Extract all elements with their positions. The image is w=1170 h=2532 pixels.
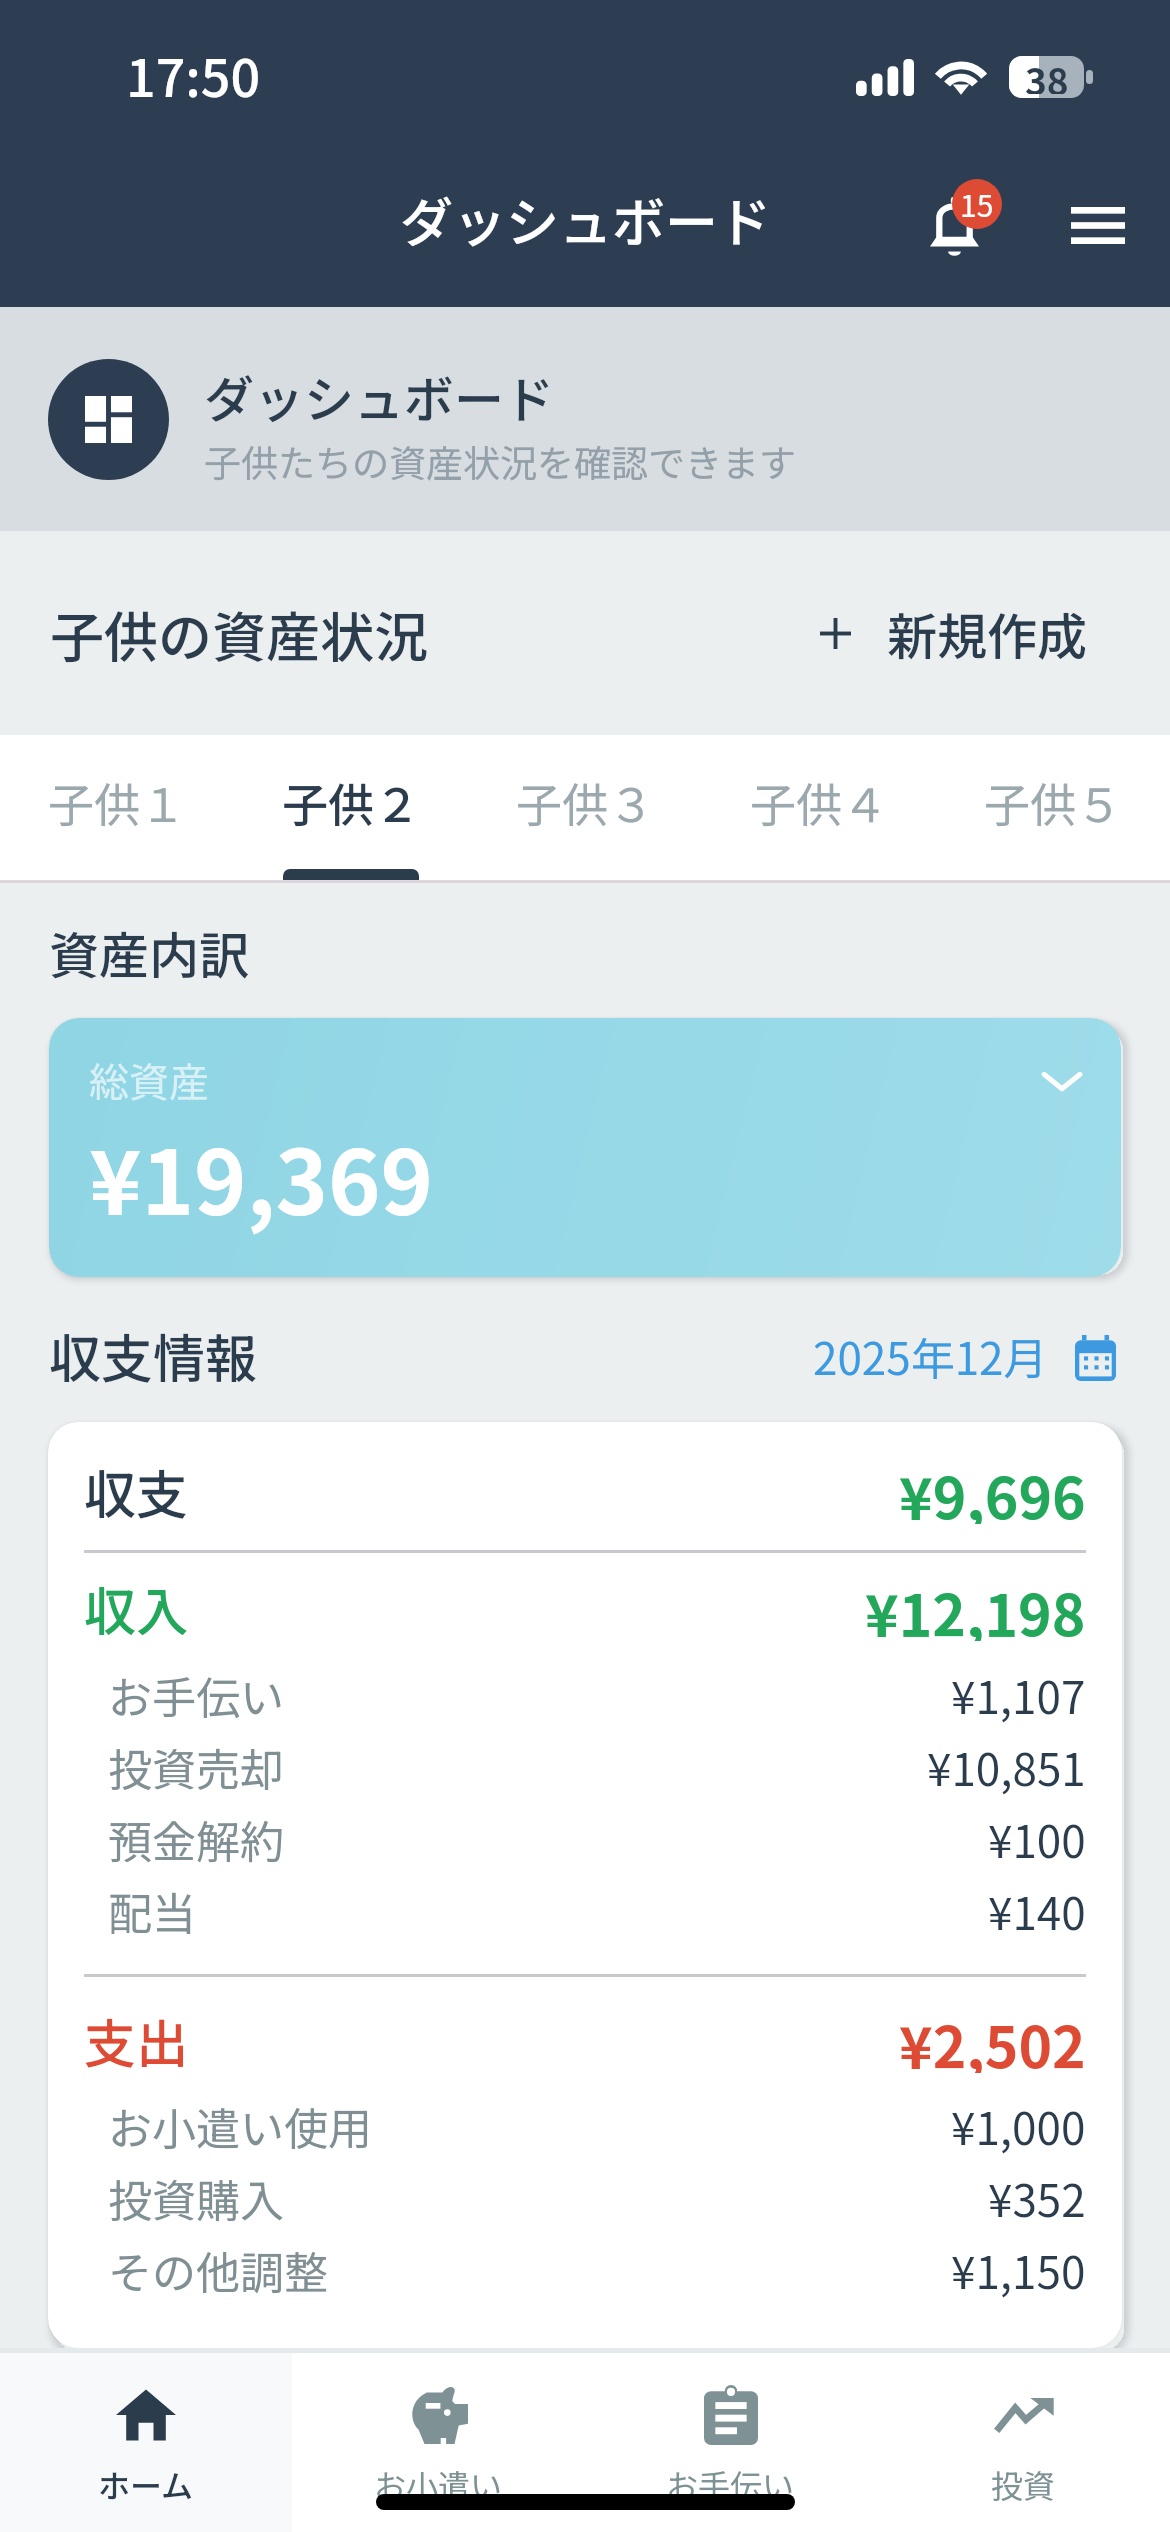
staticText: お手伝い: [108, 1663, 284, 1727]
staticText: ¥19,369: [89, 1112, 433, 1241]
staticText: ¥2,502: [899, 2003, 1086, 2073]
button[interactable]: 新規作成: [804, 581, 1103, 685]
staticText: 収支情報: [49, 1318, 258, 1393]
button[interactable]: 投資: [877, 2353, 1170, 2532]
staticText: ¥1,107: [951, 1663, 1086, 1727]
staticText: 子供４: [750, 769, 888, 836]
staticText: 新規作成: [887, 597, 1087, 669]
button[interactable]: Expand: [1033, 1052, 1091, 1110]
button[interactable]: 子供３: [468, 735, 702, 883]
staticText: 支出: [84, 2003, 189, 2073]
staticText: ¥12,198: [865, 1571, 1086, 1641]
staticText: ¥140: [988, 1879, 1086, 1943]
button[interactable]: お小遣い: [292, 2353, 584, 2532]
button[interactable]: 子供５: [936, 735, 1170, 883]
staticText: 子供１: [48, 769, 186, 836]
button[interactable]: ホーム: [0, 2353, 292, 2532]
staticText: 子供の資産状況: [50, 594, 428, 672]
staticText: ¥352: [988, 2166, 1086, 2230]
staticText: 子供３: [516, 769, 654, 836]
button[interactable]: お手伝い: [584, 2353, 877, 2532]
button[interactable]: 子供１: [0, 735, 234, 883]
button[interactable]: 2025年12月: [813, 1326, 1116, 1390]
staticText: 17:50: [126, 37, 261, 112]
staticText: 収支: [84, 1454, 189, 1524]
button[interactable]: Notifications: [910, 177, 1002, 277]
staticText: 15: [960, 182, 994, 225]
button[interactable]: 総資産: [49, 1018, 1121, 1277]
staticText: お手伝い: [666, 2461, 795, 2507]
staticText: ¥1,150: [951, 2238, 1086, 2302]
button[interactable]: 子供２: [234, 735, 468, 883]
button[interactable]: Menu: [1049, 181, 1147, 269]
staticText: その他調整: [108, 2238, 328, 2302]
button[interactable]: 子供４: [702, 735, 936, 883]
staticText: ダッシュボード: [204, 360, 554, 432]
staticText: ¥1,000: [951, 2094, 1086, 2158]
staticText: 投資売却: [108, 1735, 284, 1799]
staticText: 配当: [108, 1879, 196, 1943]
staticText: お小遣い: [374, 2461, 503, 2507]
staticText: 投資購入: [108, 2166, 284, 2230]
staticText: ダッシュボード: [400, 181, 771, 258]
staticText: 投資: [991, 2461, 1056, 2507]
staticText: 資産内訳: [49, 916, 249, 988]
staticText: 収入: [84, 1571, 189, 1641]
staticText: お小遣い使用: [108, 2094, 372, 2158]
staticText: ¥100: [988, 1807, 1086, 1871]
staticText: 子供２: [282, 769, 420, 836]
staticText: 38: [1025, 56, 1069, 94]
staticText: 2025年12月: [813, 1324, 1048, 1388]
staticText: 子供５: [984, 769, 1122, 836]
staticText: 総資産: [89, 1051, 209, 1109]
staticText: 預金解約: [108, 1807, 284, 1871]
staticText: ¥9,696: [899, 1454, 1086, 1524]
staticText: 子供たちの資産状況を確認できます: [204, 434, 796, 488]
staticText: ¥10,851: [927, 1735, 1086, 1799]
staticText: ホーム: [98, 2461, 194, 2507]
